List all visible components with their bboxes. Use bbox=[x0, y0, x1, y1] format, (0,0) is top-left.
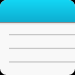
button[interactable]: Notes bbox=[0, 0, 75, 22]
button[interactable]: Note 2 bbox=[0, 35, 75, 48]
button[interactable]: Note 3 bbox=[0, 48, 75, 62]
button[interactable]: Note 4 bbox=[0, 62, 75, 75]
button[interactable]: Note 1 bbox=[0, 25, 75, 35]
